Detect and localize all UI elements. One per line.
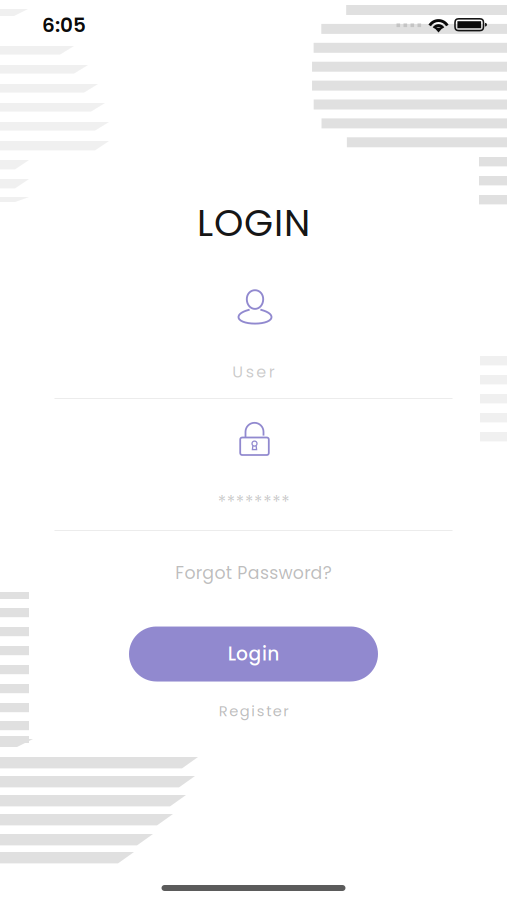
staticText: LOGIN — [197, 197, 310, 249]
staticText: User — [232, 361, 275, 383]
staticText: Login — [228, 641, 279, 667]
staticText: 6:05 — [42, 11, 86, 39]
staticText: Forgot Password? — [175, 561, 332, 585]
button[interactable]: Login — [129, 626, 378, 681]
staticText: ******** — [218, 490, 289, 514]
button[interactable]: Forgot Password? — [138, 556, 368, 590]
button[interactable]: Register — [193, 696, 313, 726]
staticText: Register — [219, 701, 288, 721]
